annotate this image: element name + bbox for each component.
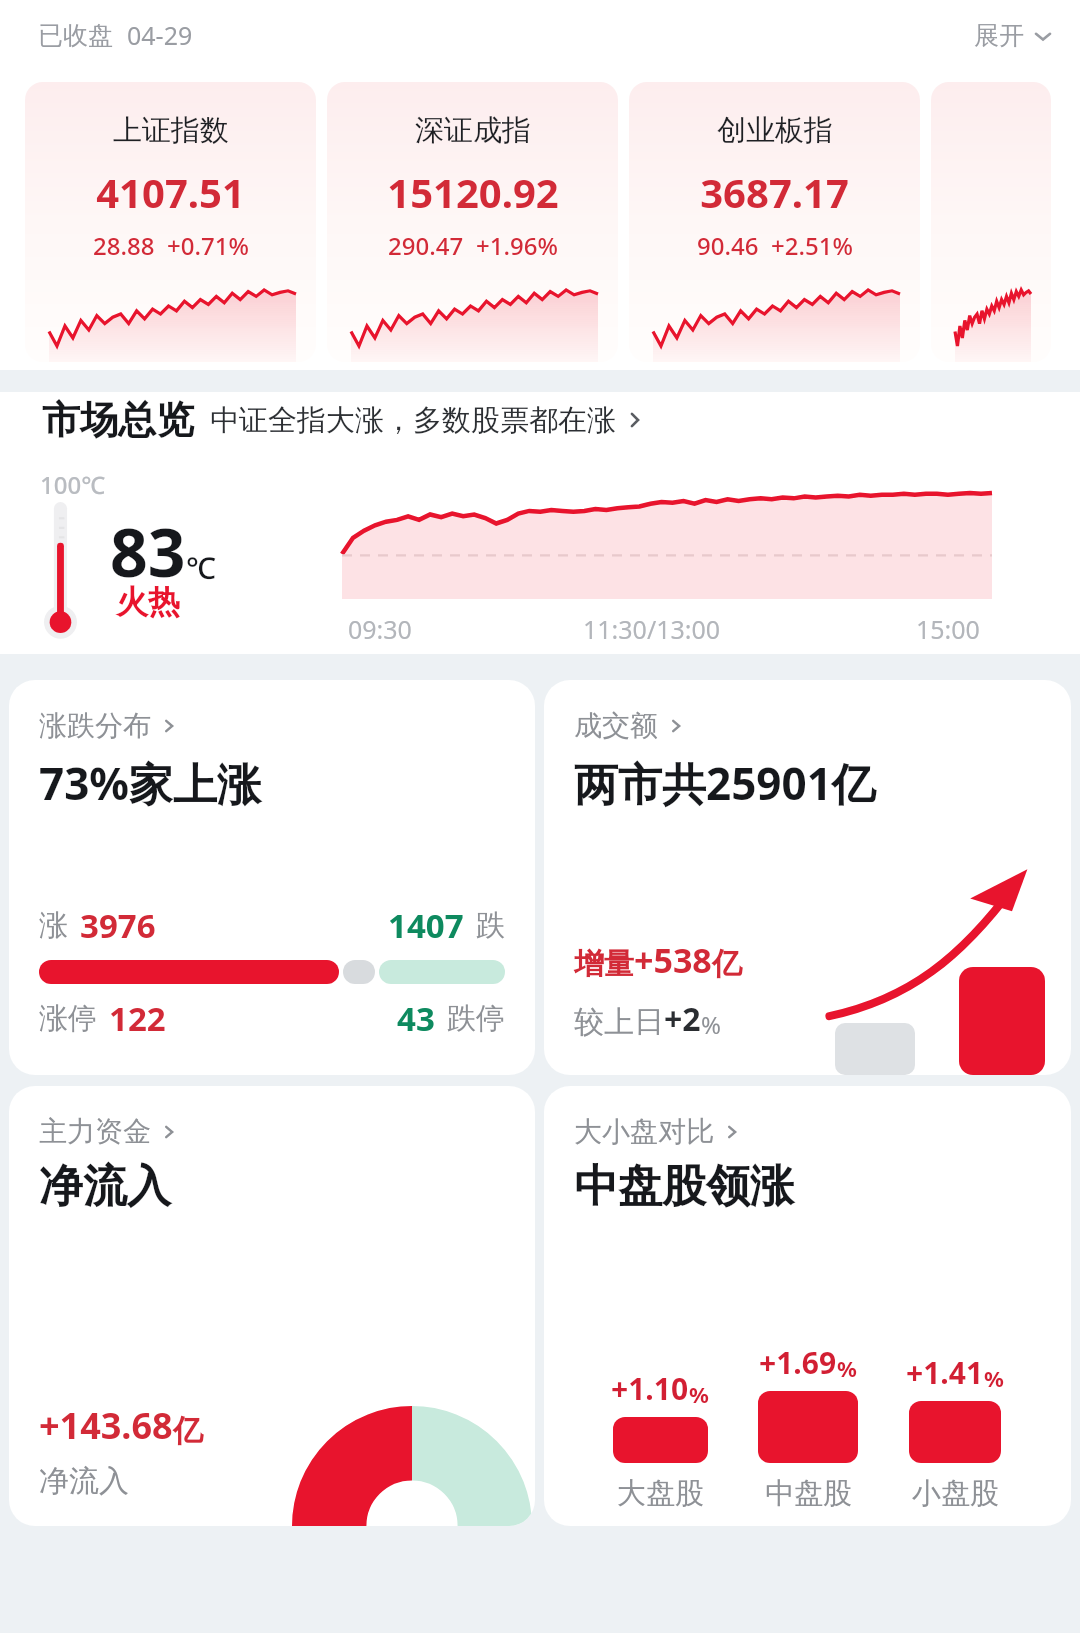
staticText: 100℃ (40, 468, 106, 501)
staticText: +1.69 (759, 1342, 837, 1383)
staticText: 15120.92 (387, 165, 559, 219)
staticText: +1.96% (476, 229, 558, 262)
staticText: 大小盘对比 (574, 1114, 714, 1149)
staticText: 290.47 (388, 229, 464, 262)
staticText: 主力资金 (39, 1114, 151, 1149)
staticText: 4107.51 (96, 165, 245, 219)
staticText: 已收盘 (38, 20, 113, 51)
staticText: 较上日 (574, 1003, 664, 1041)
staticText: 04-29 (127, 18, 193, 52)
button[interactable]: 大小盘对比 (544, 1086, 1071, 1526)
staticText: 3976 (80, 903, 156, 948)
staticText: 28.88 (93, 229, 155, 262)
staticText: 09:30 (348, 612, 412, 646)
button[interactable]: 成交额 (544, 680, 1071, 1075)
staticText: 跌停 (447, 1000, 505, 1037)
staticText: +0.71% (167, 229, 249, 262)
staticText: 亿 (712, 945, 742, 983)
staticText: 43 (397, 996, 435, 1041)
staticText: +538 (634, 937, 712, 983)
staticText: 上证指数 (113, 112, 229, 149)
staticText: % (837, 1353, 857, 1383)
staticText: 小盘股 (912, 1475, 999, 1512)
button[interactable]: 展开 (960, 12, 1080, 59)
staticText: 3687.17 (700, 165, 849, 219)
staticText: 净流入 (39, 1159, 171, 1214)
staticText: % (701, 1008, 721, 1041)
staticText: 11:30/13:00 (583, 612, 721, 646)
staticText: 创业板指 (717, 112, 833, 149)
button[interactable]: 主力资金 (9, 1086, 535, 1526)
staticText: 73%家上涨 (39, 753, 262, 813)
button[interactable] (931, 82, 1051, 362)
staticText: 火热 (116, 582, 180, 622)
button[interactable]: 市场总览 (0, 392, 1080, 454)
staticText: 两市共25901亿 (574, 753, 876, 813)
staticText: 展开 (974, 20, 1024, 51)
staticText: +2.51% (771, 229, 853, 262)
staticText: 90.46 (697, 229, 759, 262)
staticText: 市场总览 (42, 396, 194, 444)
staticText: 中盘股领涨 (574, 1159, 794, 1214)
staticText: % (689, 1379, 709, 1409)
staticText: 涨停 (39, 1000, 97, 1037)
staticText: 122 (109, 996, 166, 1041)
button[interactable]: 上证指数 (25, 82, 316, 362)
staticText: 中证全指大涨，多数股票都在涨 (210, 402, 616, 439)
staticText: 净流入 (39, 1462, 129, 1500)
staticText: 83 (110, 506, 186, 596)
button[interactable]: 涨跌分布 (9, 680, 535, 1075)
staticText: 中盘股 (765, 1475, 852, 1512)
staticText: +1.10 (611, 1368, 689, 1409)
staticText: +143.68 (39, 1401, 173, 1450)
staticText: 增量 (574, 945, 634, 983)
button[interactable]: 创业板指 (629, 82, 920, 362)
staticText: 涨跌分布 (39, 708, 151, 743)
staticText: +1.41 (906, 1352, 984, 1393)
staticText: % (984, 1363, 1004, 1393)
staticText: 成交额 (574, 708, 658, 743)
staticText: 亿 (173, 1412, 203, 1450)
staticText: 1407 (388, 903, 464, 948)
staticText: 跌 (476, 907, 505, 944)
button[interactable]: 深证成指 (327, 82, 618, 362)
staticText: 大盘股 (617, 1475, 704, 1512)
staticText: 15:00 (916, 612, 980, 646)
staticText: 深证成指 (415, 112, 531, 149)
staticText: ℃ (186, 547, 216, 588)
staticText: 涨 (39, 907, 68, 944)
staticText: +2 (664, 997, 701, 1041)
